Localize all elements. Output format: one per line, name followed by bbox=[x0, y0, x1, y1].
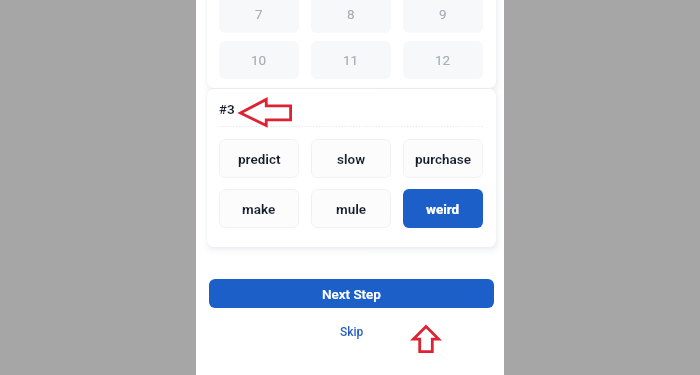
button[interactable]: 11 bbox=[311, 41, 391, 79]
button[interactable]: mule bbox=[311, 189, 391, 228]
button[interactable]: 12 bbox=[403, 41, 483, 79]
button[interactable]: slow bbox=[311, 139, 391, 178]
button[interactable]: weird bbox=[403, 189, 483, 228]
staticText: 9 bbox=[439, 6, 447, 22]
staticText: 7 bbox=[255, 6, 263, 22]
button[interactable]: Next Step bbox=[209, 279, 494, 308]
staticText: 10 bbox=[251, 52, 267, 68]
staticText: 8 bbox=[347, 6, 355, 22]
button[interactable]: 8 bbox=[311, 0, 391, 33]
staticText: predict bbox=[238, 151, 281, 167]
staticText: make bbox=[242, 201, 276, 217]
staticText: purchase bbox=[415, 151, 472, 167]
staticText: Skip bbox=[340, 325, 364, 339]
staticText: slow bbox=[337, 151, 366, 167]
button[interactable]: 7 bbox=[219, 0, 299, 33]
staticText: mule bbox=[336, 201, 367, 217]
button[interactable]: predict bbox=[219, 139, 299, 178]
button[interactable]: purchase bbox=[403, 139, 483, 178]
button[interactable]: 10 bbox=[219, 41, 299, 79]
staticText: weird bbox=[426, 201, 460, 217]
button[interactable]: Skip bbox=[326, 323, 378, 341]
staticText: 12 bbox=[435, 52, 451, 68]
staticText: Next Step bbox=[322, 286, 381, 302]
button[interactable]: 9 bbox=[403, 0, 483, 33]
button[interactable]: make bbox=[219, 189, 299, 228]
staticText: #3 bbox=[219, 101, 235, 117]
staticText: 11 bbox=[343, 52, 359, 68]
